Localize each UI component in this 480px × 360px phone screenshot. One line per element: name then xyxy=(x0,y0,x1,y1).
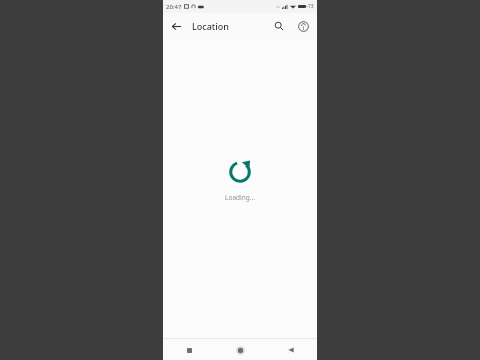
button[interactable]: Back xyxy=(281,340,301,360)
button[interactable]: Help xyxy=(291,14,315,38)
staticText: Location xyxy=(192,20,229,32)
button[interactable]: Recents xyxy=(179,340,199,360)
button[interactable]: Home xyxy=(230,340,250,360)
button[interactable]: Search xyxy=(267,14,291,38)
staticText: 73 xyxy=(308,3,314,10)
staticText: 20:47 xyxy=(166,3,182,11)
button[interactable]: Back xyxy=(163,13,189,39)
staticText: Loading... xyxy=(225,193,255,202)
